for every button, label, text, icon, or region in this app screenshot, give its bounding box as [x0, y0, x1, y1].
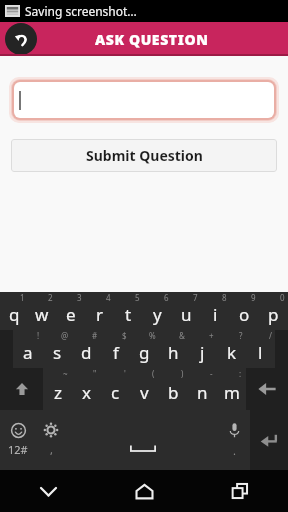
staticText: $ [122, 330, 127, 341]
button[interactable]: 4 [85, 292, 114, 330]
staticText: # [92, 330, 98, 341]
button[interactable]: " [72, 368, 101, 410]
staticText: c [111, 381, 120, 404]
button[interactable]: Voice input [218, 410, 250, 470]
button[interactable]: 7 [172, 292, 201, 330]
button[interactable]: Enter [250, 410, 288, 470]
button[interactable]: ! [13, 330, 43, 368]
staticText: x [82, 381, 91, 404]
button[interactable]: Shift [0, 368, 43, 410]
staticText: - [210, 368, 213, 379]
staticText: 6 [164, 292, 169, 303]
staticText: w [35, 303, 49, 326]
staticText: v [140, 381, 149, 404]
staticText: : [239, 368, 242, 379]
staticText: ? [239, 330, 243, 341]
button[interactable]: $ [101, 330, 130, 368]
button[interactable]: Recent apps [192, 470, 288, 512]
staticText: + [209, 330, 214, 341]
button[interactable]: Hide keyboard [0, 470, 96, 512]
button[interactable] [9, 77, 279, 123]
button[interactable]: ~ [43, 368, 72, 410]
staticText: r [96, 303, 104, 326]
staticText: 2 [48, 292, 53, 303]
button[interactable]: 8 [201, 292, 230, 330]
staticText: 8 [222, 292, 227, 303]
staticText: u [181, 303, 192, 326]
staticText: g [139, 341, 150, 364]
button[interactable]: 9 [230, 292, 259, 330]
staticText: 12# [8, 442, 28, 457]
staticText: Saving screenshot… [25, 3, 137, 19]
button[interactable]: 5 [114, 292, 143, 330]
button[interactable]: Symbols [0, 410, 35, 470]
staticText: ( [152, 368, 155, 379]
staticText: 0 [280, 292, 285, 303]
staticText: , [50, 442, 53, 457]
staticText: y [153, 303, 162, 326]
staticText: 3 [77, 292, 82, 303]
button[interactable]: ? [217, 330, 246, 368]
staticText: ASK QUESTION [95, 30, 209, 49]
button[interactable]: 0 [259, 292, 288, 330]
staticText: . [233, 443, 236, 458]
staticText: b [168, 381, 179, 404]
staticText: h [168, 341, 179, 364]
button[interactable]: Space [67, 410, 218, 470]
button[interactable]: 1 [0, 292, 28, 330]
button[interactable]: 3 [56, 292, 85, 330]
staticText: i [213, 303, 218, 326]
staticText: f [113, 341, 119, 364]
button[interactable]: 2 [28, 292, 56, 330]
button[interactable]: % [130, 330, 159, 368]
staticText: 4 [106, 292, 111, 303]
staticText: 7 [193, 292, 198, 303]
staticText: t [125, 303, 132, 326]
button[interactable]: Back [5, 23, 37, 55]
staticText: " [93, 368, 97, 379]
staticText: p [268, 303, 279, 326]
button[interactable]: ' [101, 368, 130, 410]
staticText: 9 [251, 292, 256, 303]
staticText: % [149, 330, 156, 341]
staticText: o [239, 303, 250, 326]
button[interactable]: + [188, 330, 217, 368]
staticText: n [197, 381, 208, 404]
button[interactable]: ( [130, 368, 159, 410]
staticText: l [258, 341, 263, 364]
staticText: j [200, 341, 205, 364]
staticText: ~ [63, 368, 68, 379]
staticText: z [54, 381, 62, 404]
button[interactable]: @ [43, 330, 72, 368]
button[interactable]: Home [96, 470, 192, 512]
staticText: a [23, 341, 33, 364]
staticText: k [227, 341, 237, 364]
button[interactable]: : [217, 368, 246, 410]
button[interactable]: Backspace [246, 368, 288, 410]
button[interactable]: Submit Question [11, 139, 277, 172]
button[interactable]: Settings [35, 410, 67, 470]
staticText: ' [124, 368, 126, 379]
staticText: ) [181, 368, 184, 379]
staticText: m [224, 381, 240, 404]
staticText: Submit Question [86, 146, 203, 165]
staticText: 1 [20, 292, 25, 303]
staticText: q [9, 303, 20, 326]
staticText: d [81, 341, 92, 364]
button[interactable]: 6 [143, 292, 172, 330]
button[interactable]: / [246, 330, 275, 368]
staticText: @ [61, 330, 69, 341]
button[interactable]: - [188, 368, 217, 410]
staticText: s [53, 341, 62, 364]
button[interactable]: # [72, 330, 101, 368]
staticText: / [269, 330, 272, 341]
button[interactable]: & [159, 330, 188, 368]
button[interactable]: ) [159, 368, 188, 410]
staticText: 5 [135, 292, 140, 303]
staticText: ! [37, 330, 40, 341]
staticText: & [179, 330, 185, 341]
staticText: e [66, 303, 76, 326]
